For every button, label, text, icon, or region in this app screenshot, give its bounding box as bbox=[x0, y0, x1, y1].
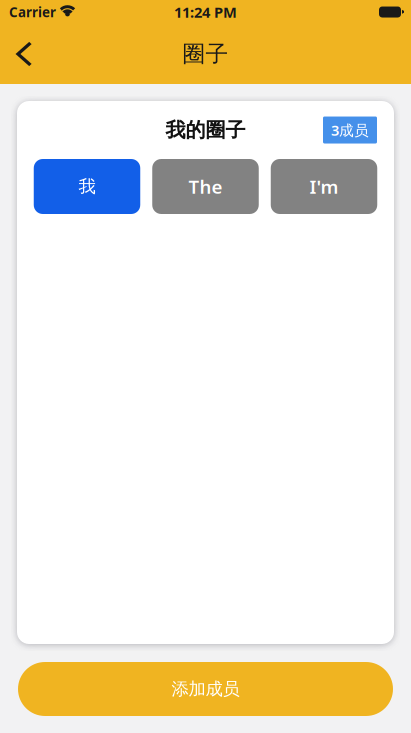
staticText: 3成员 bbox=[331, 120, 369, 140]
staticText: Carrier bbox=[9, 3, 56, 21]
staticText: 我 bbox=[78, 176, 95, 197]
staticText: I'm bbox=[309, 174, 338, 199]
button[interactable]: The bbox=[152, 159, 259, 214]
staticText: 11:24 PM bbox=[174, 2, 237, 22]
staticText: 添加成员 bbox=[171, 678, 239, 700]
button[interactable]: Back bbox=[0, 29, 60, 79]
staticText: 圈子 bbox=[182, 40, 228, 68]
button[interactable]: 添加成员 bbox=[18, 662, 393, 716]
button[interactable]: 我 bbox=[34, 159, 140, 214]
button[interactable]: I'm bbox=[271, 159, 377, 214]
staticText: The bbox=[188, 174, 222, 199]
staticText: 我的圈子 bbox=[165, 118, 245, 142]
